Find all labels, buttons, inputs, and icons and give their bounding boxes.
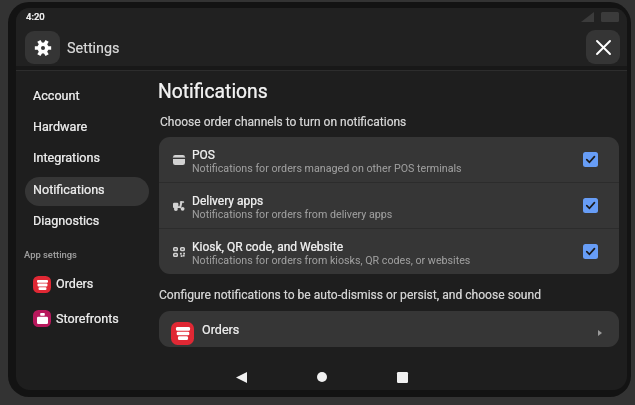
staticText: Hardware [33, 119, 88, 134]
staticText: Notifications for orders from delivery a… [192, 208, 393, 221]
staticText: Integrations [33, 150, 100, 165]
button[interactable] [25, 274, 149, 297]
staticText: Configure notifications to be auto-dismi… [159, 288, 541, 302]
button[interactable]: Toggle Kiosk, QR code, and Website [583, 244, 598, 259]
button[interactable]: Toggle POS [583, 152, 598, 167]
staticText: Orders [56, 276, 94, 291]
button[interactable] [25, 146, 149, 175]
button[interactable] [25, 114, 149, 143]
button[interactable]: Back [200, 364, 283, 390]
button[interactable]: Home [280, 364, 363, 390]
button[interactable] [25, 83, 149, 112]
staticText: Notifications for orders managed on othe… [192, 162, 462, 175]
staticText: Notifications for orders from kiosks, QR… [192, 254, 471, 267]
button[interactable]: Kiosk, QR code, and Website [159, 229, 619, 274]
staticText: 4:20 [26, 11, 45, 22]
staticText: Choose order channels to turn on notific… [160, 115, 407, 129]
staticText: Delivery apps [192, 194, 264, 208]
staticText: Notifications [158, 80, 268, 103]
staticText: Kiosk, QR code, and Website [192, 240, 343, 254]
button[interactable] [25, 31, 60, 64]
staticText: POS [192, 148, 215, 162]
staticText: Account [33, 88, 80, 103]
button[interactable]: POS [159, 137, 619, 182]
button[interactable] [159, 311, 619, 347]
button[interactable] [25, 308, 149, 331]
staticText: Orders [202, 322, 240, 337]
staticText: Settings [67, 40, 120, 57]
button[interactable]: Toggle Delivery apps [583, 198, 598, 213]
staticText: App settings [24, 249, 77, 260]
button[interactable]: Delivery apps [159, 183, 619, 228]
button[interactable]: Recents [361, 364, 444, 390]
button[interactable] [25, 177, 149, 206]
staticText: Storefronts [56, 311, 119, 326]
staticText: Diagnostics [33, 213, 100, 228]
button[interactable]: Close [586, 30, 620, 64]
button[interactable] [25, 208, 149, 237]
staticText: Notifications [33, 182, 105, 197]
